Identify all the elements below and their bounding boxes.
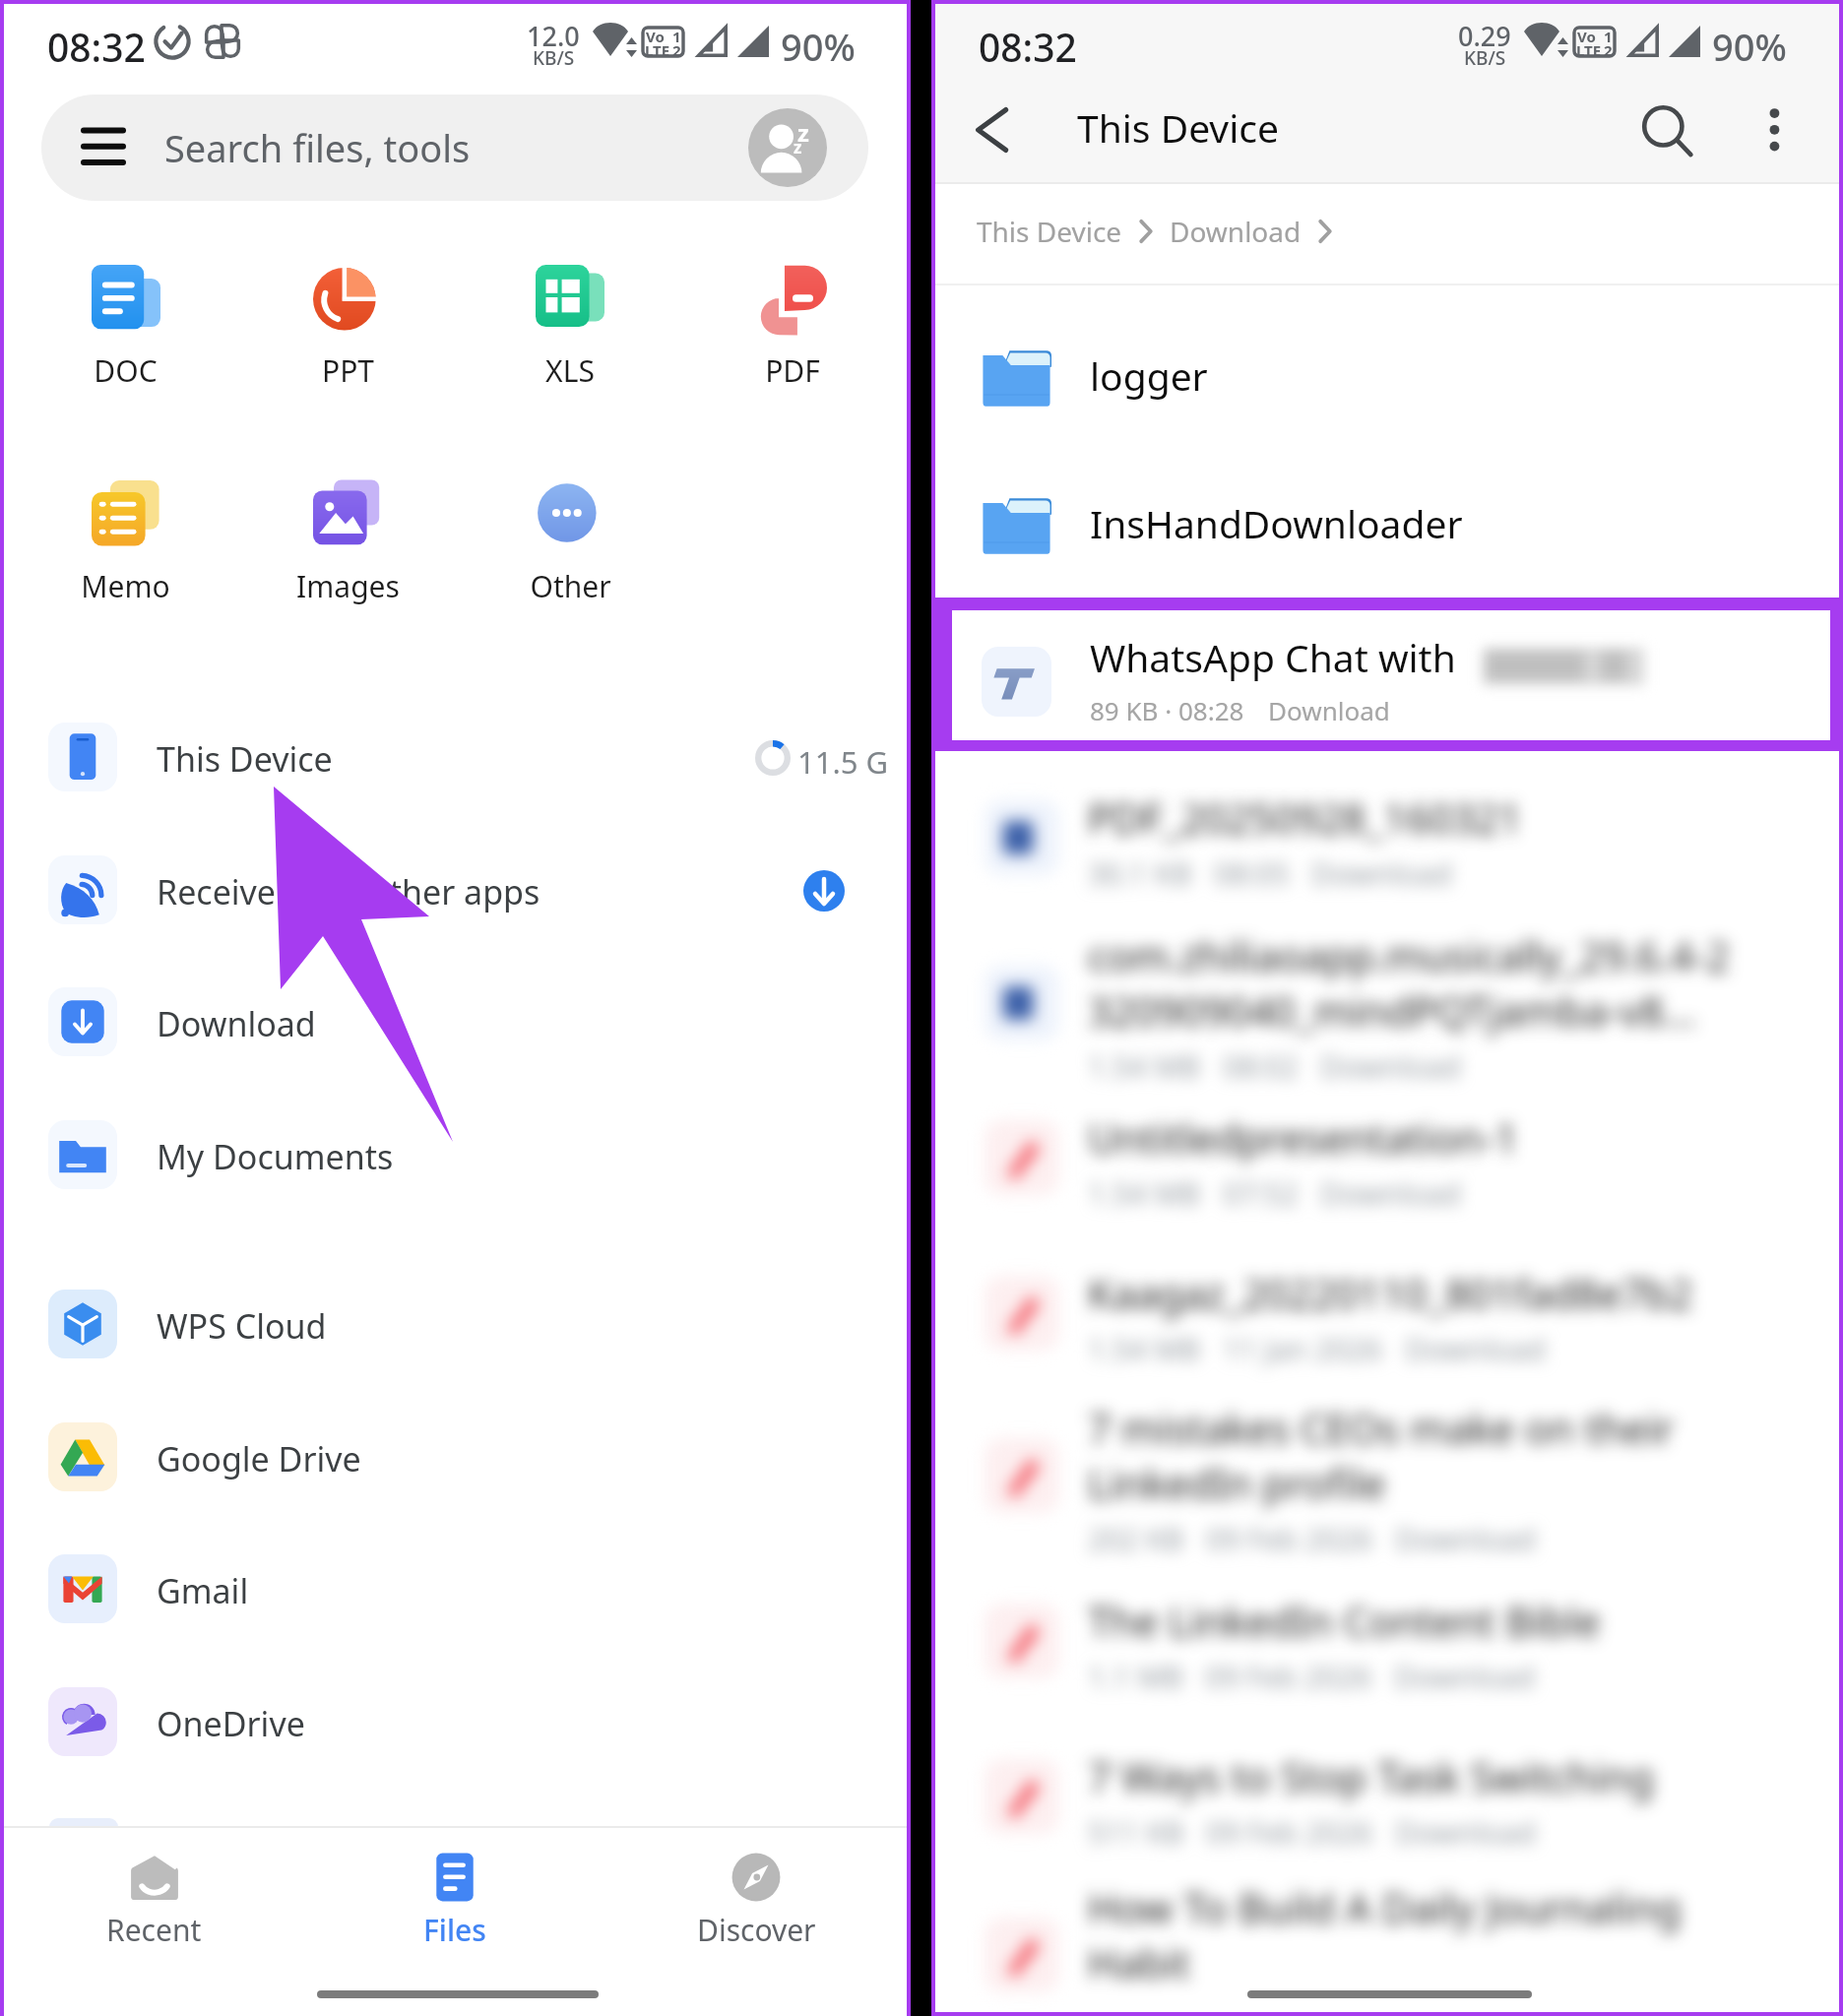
staticText: 2 xyxy=(672,40,681,60)
staticText: Download xyxy=(1395,1812,1536,1853)
button[interactable]: Images xyxy=(236,4,459,611)
staticText: KB/S xyxy=(533,45,575,71)
staticText: WPS Cloud xyxy=(157,1303,327,1349)
staticText: Download xyxy=(1311,853,1452,894)
staticText: PDF_20250928_160321 xyxy=(1088,790,1522,846)
staticText: 11 Jan 2026 xyxy=(1223,1329,1383,1369)
staticText: 90% xyxy=(1712,21,1787,72)
staticText: com.zhiliaoapp.musically_29.6.4-2 xyxy=(1088,928,1730,983)
button[interactable]: Gmail xyxy=(4,1527,907,1659)
staticText: 07:52 xyxy=(1223,1173,1299,1214)
staticText: 202 KB xyxy=(1088,1519,1184,1559)
staticText: 08:32 xyxy=(979,21,1077,73)
staticText: 2 xyxy=(1604,40,1613,60)
staticText: 511 KB xyxy=(1088,1812,1184,1853)
staticText: 09 Feb 2026 xyxy=(1205,1657,1372,1697)
staticText: 11.5 G xyxy=(797,741,889,783)
staticText: Discover xyxy=(697,1910,816,1950)
button[interactable]: XLS xyxy=(459,4,681,396)
staticText: 30.1 KB xyxy=(1088,853,1192,894)
staticText: Download xyxy=(1405,1329,1546,1369)
staticText: The LinkedIn Content Bible xyxy=(1088,1594,1601,1649)
staticText: z xyxy=(794,136,802,158)
staticText: 1 xyxy=(672,27,681,46)
staticText: Download xyxy=(1170,213,1302,250)
staticText: KB/S xyxy=(1464,45,1506,71)
staticText: 08:05 xyxy=(1214,853,1290,894)
staticText: Untitledpresentation-1 xyxy=(1088,1110,1518,1165)
staticText: PPT xyxy=(322,350,374,391)
button[interactable]: DOC xyxy=(15,4,236,396)
button[interactable]: Search files, tools xyxy=(41,94,868,201)
staticText: 12.0 xyxy=(527,18,580,54)
button[interactable]: PPT xyxy=(236,4,459,396)
staticText: Google Drive xyxy=(157,1436,361,1481)
staticText: This Device xyxy=(1077,101,1279,154)
staticText: Download xyxy=(1320,1046,1461,1087)
staticText: How To Build A Daily Journaling xyxy=(1088,1880,1682,1935)
staticText: LTE xyxy=(1576,40,1602,60)
staticText: 7 Ways to Stop Task Switching xyxy=(1088,1749,1654,1804)
staticText: Recent xyxy=(106,1910,202,1950)
staticText: Download xyxy=(1394,1657,1535,1697)
button[interactable]: WhatsApp Chat with xyxy=(935,610,1839,740)
button[interactable]: This Device xyxy=(4,695,907,827)
button[interactable]: Recent xyxy=(4,1837,304,1960)
staticText: logger xyxy=(1090,349,1208,402)
button[interactable]: InsHandDownloader xyxy=(935,482,1839,630)
staticText: Habit xyxy=(1088,1935,1190,1990)
staticText: Files xyxy=(423,1910,486,1950)
staticText: Download xyxy=(1268,693,1390,727)
staticText: 08:02 xyxy=(1223,1046,1299,1087)
staticText: PDF xyxy=(765,350,820,391)
staticText: 1 xyxy=(1604,27,1613,46)
button[interactable]: Receive from other apps xyxy=(4,828,907,960)
button[interactable]: Back xyxy=(957,91,1036,169)
staticText: Download xyxy=(1395,1998,1536,2016)
staticText: 1.54 MB xyxy=(1088,1173,1201,1214)
staticText: Download xyxy=(157,1001,316,1046)
staticText: z xyxy=(797,116,809,149)
staticText: LinkedIn profile xyxy=(1088,1456,1386,1511)
staticText: 09 Feb 2026 xyxy=(1206,1519,1373,1559)
staticText: Receive from other apps xyxy=(157,869,540,914)
staticText: Vo xyxy=(1577,27,1596,46)
button[interactable]: Other xyxy=(459,4,681,611)
button[interactable]: Memo xyxy=(15,4,236,611)
button[interactable]: Google Drive xyxy=(4,1395,907,1527)
staticText: Search files, tools xyxy=(164,122,471,173)
staticText: 1.54 MB xyxy=(1088,1329,1201,1369)
staticText: Download xyxy=(1320,1173,1461,1214)
staticText: 1.1 MB xyxy=(1088,1657,1183,1697)
staticText: 09 Feb 2026 xyxy=(1206,1998,1373,2016)
button[interactable]: OneDrive xyxy=(4,1660,907,1792)
button[interactable]: Discover xyxy=(605,1837,907,1960)
staticText: 610 KB xyxy=(1088,1998,1184,2016)
staticText: InsHandDownloader xyxy=(1090,497,1463,549)
button[interactable]: Search xyxy=(1629,93,1706,169)
staticText: My Documents xyxy=(157,1134,394,1179)
button[interactable]: Files xyxy=(304,1837,605,1960)
staticText: XLS xyxy=(545,350,595,391)
staticText: 89 KB · 08:28 xyxy=(1090,693,1244,727)
staticText: Vo xyxy=(646,27,665,46)
button[interactable]: Receive file xyxy=(803,870,845,912)
button[interactable]: PDF xyxy=(681,4,904,396)
button[interactable]: My Documents xyxy=(4,1093,907,1225)
button[interactable]: More options xyxy=(1738,93,1814,169)
staticText: Other xyxy=(530,566,611,606)
button[interactable]: WPS Cloud xyxy=(4,1262,907,1394)
staticText: 08:32 xyxy=(47,21,146,73)
staticText: Memo xyxy=(81,566,170,606)
button[interactable]: Download xyxy=(4,960,907,1092)
staticText: WhatsApp Chat with xyxy=(1090,631,1456,683)
staticText: This Device xyxy=(157,736,333,782)
staticText: Download xyxy=(1395,1519,1536,1559)
button[interactable]: Account xyxy=(748,108,827,187)
staticText: LTE xyxy=(645,40,670,60)
staticText: Kaagaz_20220110_801fad8e7b2 xyxy=(1088,1266,1693,1321)
button[interactable]: logger xyxy=(935,335,1839,482)
staticText: 320909040_mindPQTjamba-v8... xyxy=(1088,983,1696,1039)
staticText: 7 mistakes CEOs make on their xyxy=(1088,1401,1675,1456)
staticText: Gmail xyxy=(157,1568,249,1613)
